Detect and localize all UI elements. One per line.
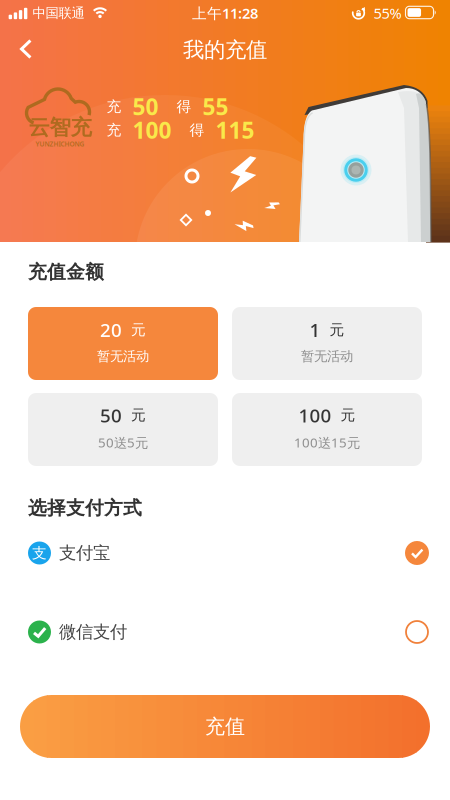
staticText: 50: [132, 91, 158, 121]
staticText: 100: [298, 403, 331, 428]
staticText: 支付宝: [59, 542, 110, 564]
staticText: 充: [106, 97, 121, 115]
staticText: 暂无活动: [97, 348, 149, 365]
staticText: 上午11:28: [192, 3, 258, 23]
staticText: 元: [329, 321, 344, 339]
staticText: 20: [100, 317, 122, 342]
staticText: 暂无活动: [301, 348, 353, 365]
staticText: 我的充值: [183, 37, 267, 63]
staticText: 充值金额: [28, 260, 104, 283]
staticText: 中国联通: [32, 5, 84, 21]
staticText: 微信支付: [59, 621, 127, 643]
staticText: 元: [131, 406, 146, 424]
button[interactable]: 20: [28, 307, 218, 380]
button[interactable]: 返回: [18, 39, 34, 59]
staticText: 得: [176, 97, 191, 115]
staticText: 115: [215, 115, 254, 145]
button[interactable]: 1: [232, 307, 422, 380]
staticText: 55%: [373, 3, 401, 23]
staticText: 100送15元: [294, 433, 360, 451]
button[interactable]: 100: [232, 393, 422, 466]
staticText: 云智充: [28, 114, 91, 141]
staticText: 50: [100, 403, 122, 428]
staticText: 支: [32, 544, 47, 562]
staticText: YUNZHICHONG: [35, 140, 84, 148]
staticText: 得: [189, 121, 204, 139]
button[interactable]: 充值: [20, 695, 430, 758]
button[interactable]: 支: [0, 530, 450, 576]
staticText: 100: [132, 115, 171, 145]
staticText: 元: [131, 321, 146, 339]
staticText: 选择支付方式: [28, 496, 142, 519]
staticText: 元: [340, 406, 355, 424]
button[interactable]: 50: [28, 393, 218, 466]
staticText: 1: [309, 317, 320, 342]
staticText: 55: [202, 91, 228, 121]
staticText: 50送5元: [98, 433, 148, 451]
staticText: 充: [106, 121, 121, 139]
staticText: 充值: [205, 714, 245, 739]
button[interactable]: 微信支付: [0, 609, 450, 655]
